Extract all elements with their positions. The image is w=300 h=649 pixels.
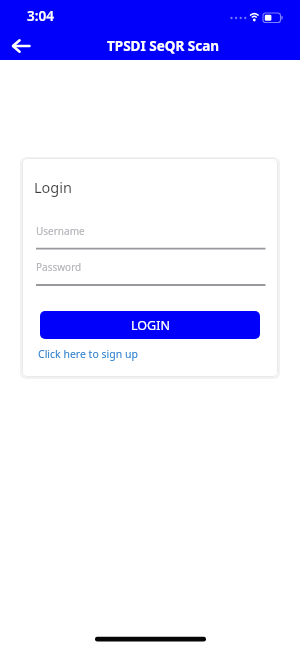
staticText: Username [36,224,85,238]
staticText: 3:04 [27,7,54,25]
staticText: Click here to sign up [38,347,138,361]
staticText: LOGIN [131,317,170,334]
staticText: Password [36,260,82,274]
staticText: TPSDI SeQR Scan [107,37,220,55]
staticText: Login [34,177,72,197]
